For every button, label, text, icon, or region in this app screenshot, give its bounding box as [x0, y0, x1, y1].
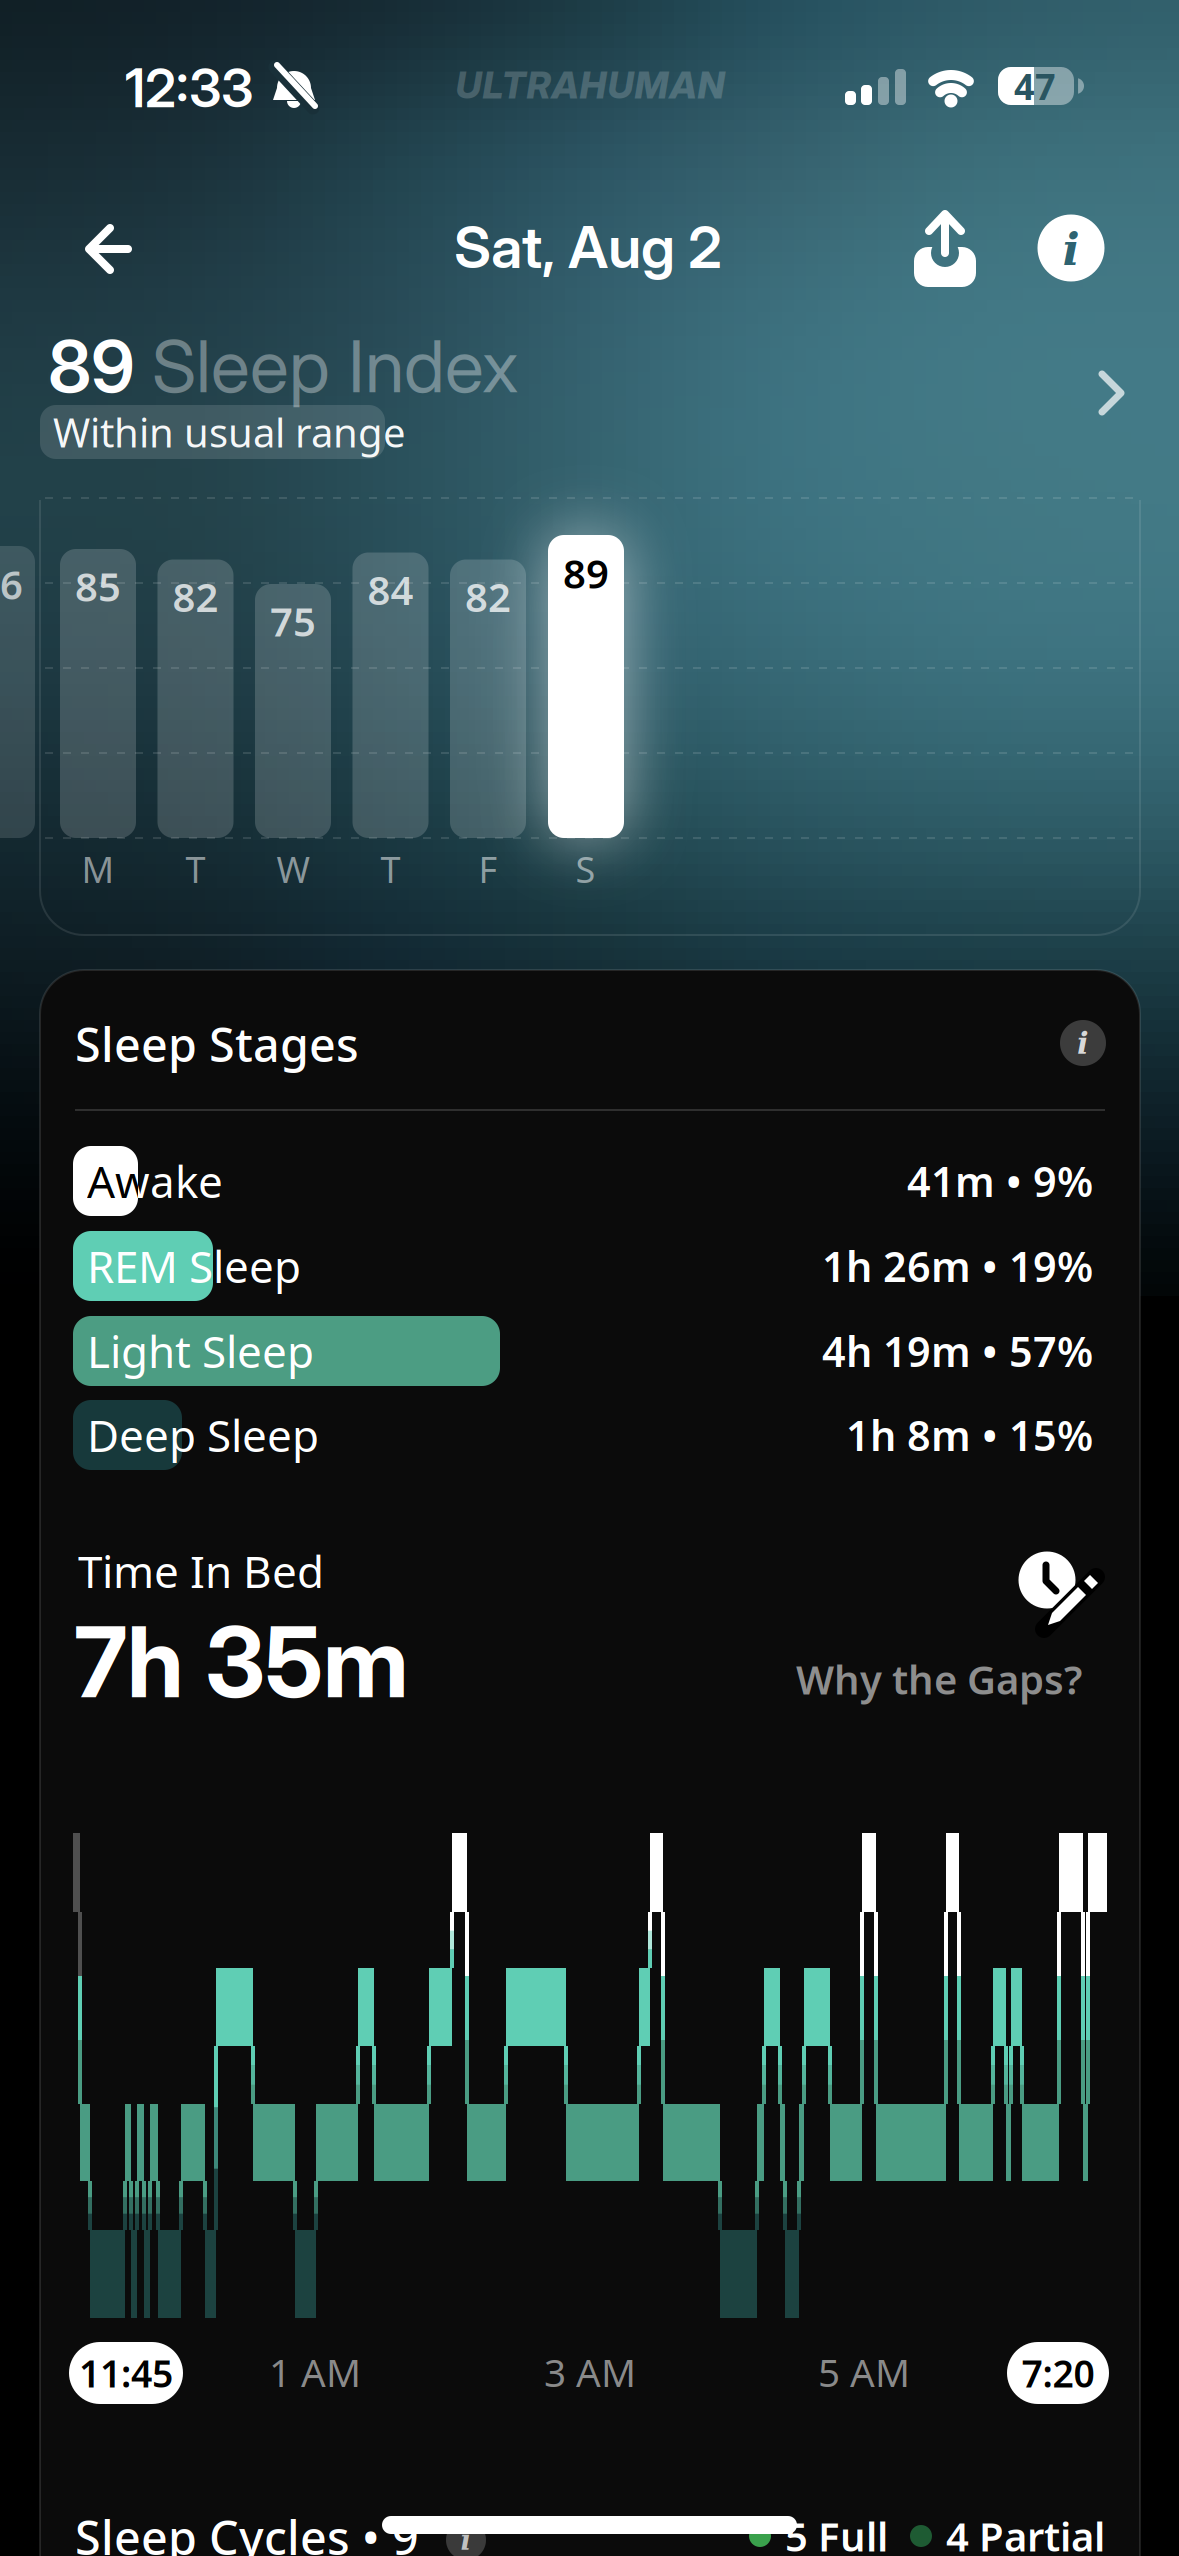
staticText: 75: [270, 594, 316, 647]
staticText: 82: [465, 570, 511, 623]
staticText: 1h 26m • 19%: [822, 1239, 1093, 1293]
staticText: 3 AM: [544, 2346, 636, 2398]
staticText: 4 Partial: [946, 2509, 1105, 2556]
staticText: Sleep Cycles • 9: [75, 2506, 419, 2556]
button[interactable]: Back: [49, 209, 149, 289]
button[interactable]: 89: [0, 310, 1179, 440]
staticText: 85: [75, 559, 121, 612]
staticText: ULTRAHUMAN: [455, 63, 724, 107]
staticText: M: [81, 845, 114, 893]
staticText: 41m • 9%: [907, 1154, 1093, 1208]
staticText: 7:20: [1021, 2348, 1094, 2398]
staticText: Awake: [87, 1152, 223, 1210]
staticText: F: [478, 845, 497, 893]
staticText: 47: [1014, 62, 1056, 110]
staticText: 11:45: [79, 2348, 173, 2398]
staticText: W: [276, 845, 309, 893]
staticText: 1h 8m • 15%: [846, 1408, 1093, 1462]
staticText: Deep Sleep: [87, 1406, 319, 1464]
staticText: Light Sleep: [87, 1322, 314, 1380]
staticText: 7h 35m: [74, 1603, 409, 1721]
staticText: Time In Bed: [78, 1542, 324, 1600]
staticText: REM Sleep: [87, 1237, 301, 1295]
staticText: T: [185, 845, 205, 893]
staticText: i: [460, 2524, 471, 2556]
button[interactable]: Info: [1031, 208, 1111, 288]
staticText: Sleep Index: [152, 322, 518, 409]
staticText: 5 AM: [818, 2346, 910, 2398]
button[interactable]: Sleep cycles info: [441, 2515, 491, 2556]
staticText: 84: [367, 563, 413, 616]
staticText: 12:33: [125, 56, 253, 120]
staticText: 4h 19m • 57%: [822, 1324, 1093, 1378]
button[interactable]: Why the Gaps?: [762, 1649, 1082, 1709]
button[interactable]: Share: [900, 205, 990, 295]
button[interactable]: Edit time in bed: [1008, 1543, 1098, 1633]
staticText: 1 AM: [269, 2346, 361, 2398]
staticText: Awake: [87, 1152, 223, 1210]
staticText: 89: [563, 546, 609, 599]
staticText: i: [1062, 222, 1079, 276]
button[interactable]: Sleep stages info: [1053, 1013, 1113, 1073]
staticText: 82: [172, 570, 218, 623]
staticText: 5 Full: [785, 2509, 888, 2556]
staticText: Why the Gaps?: [796, 1652, 1082, 1705]
staticText: T: [380, 845, 400, 893]
staticText: i: [1077, 1025, 1089, 1061]
staticText: Within usual range: [53, 405, 406, 458]
staticText: S: [575, 845, 595, 893]
staticText: Sleep Stages: [75, 1013, 359, 1075]
staticText: Sat, Aug 2: [454, 212, 722, 282]
staticText: 89: [48, 322, 135, 409]
staticText: 6: [0, 557, 23, 610]
